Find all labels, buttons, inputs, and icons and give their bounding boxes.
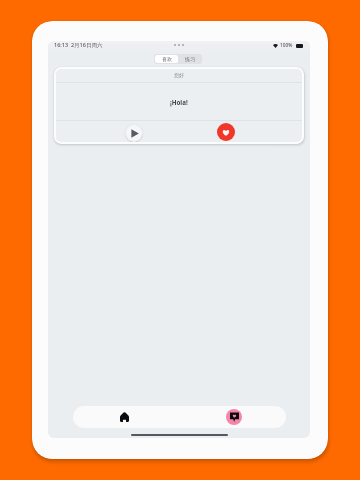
button[interactable]: Play (125, 124, 143, 142)
button[interactable]: Favorite (217, 123, 235, 141)
staticText: 16:13 2月16日周六 (54, 41, 103, 49)
button[interactable]: 练习 (178, 55, 201, 63)
button[interactable]: Favorites (179, 406, 286, 428)
button[interactable]: Home (73, 406, 179, 428)
staticText: 喜欢 (162, 56, 172, 62)
staticText: 练习 (185, 56, 195, 62)
staticText: 您好 (174, 72, 184, 78)
staticText: 100% (280, 42, 293, 49)
button[interactable]: 喜欢 (155, 55, 178, 63)
staticText: ¡Hola! (170, 98, 188, 106)
